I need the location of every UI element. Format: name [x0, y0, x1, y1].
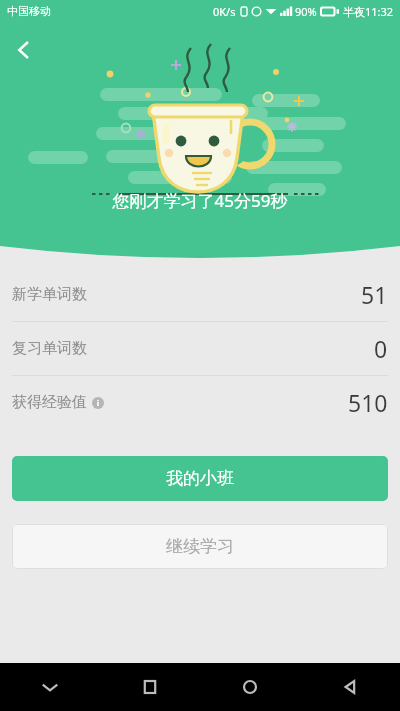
button[interactable]: Home [200, 663, 300, 711]
staticText: 0 [374, 333, 388, 364]
staticText: 半夜11:32 [343, 4, 394, 19]
button[interactable]: 我的小班 [12, 456, 388, 501]
button[interactable]: 获得经验值 [0, 376, 400, 429]
staticText: 51 [361, 279, 388, 310]
staticText: 获得经验值 [12, 393, 87, 412]
button[interactable]: Back [4, 30, 44, 70]
staticText: 新学单词数 [12, 285, 87, 304]
staticText: 510 [348, 387, 388, 418]
staticText: 我的小班 [166, 468, 234, 489]
staticText: 中国移动 [7, 4, 51, 18]
button[interactable]: 复习单词数 [0, 322, 400, 375]
staticText: 0K/s [213, 4, 236, 19]
staticText: 复习单词数 [12, 339, 87, 358]
button[interactable]: Back [300, 663, 400, 711]
staticText: 继续学习 [166, 536, 234, 557]
staticText: 您刚才学习了45分59秒 [0, 189, 400, 212]
button[interactable]: 新学单词数 [0, 268, 400, 321]
button[interactable]: 继续学习 [12, 524, 388, 569]
button[interactable]: Hide keyboard [0, 663, 100, 711]
button[interactable]: Recent apps [100, 663, 200, 711]
staticText: 90% [295, 4, 317, 19]
